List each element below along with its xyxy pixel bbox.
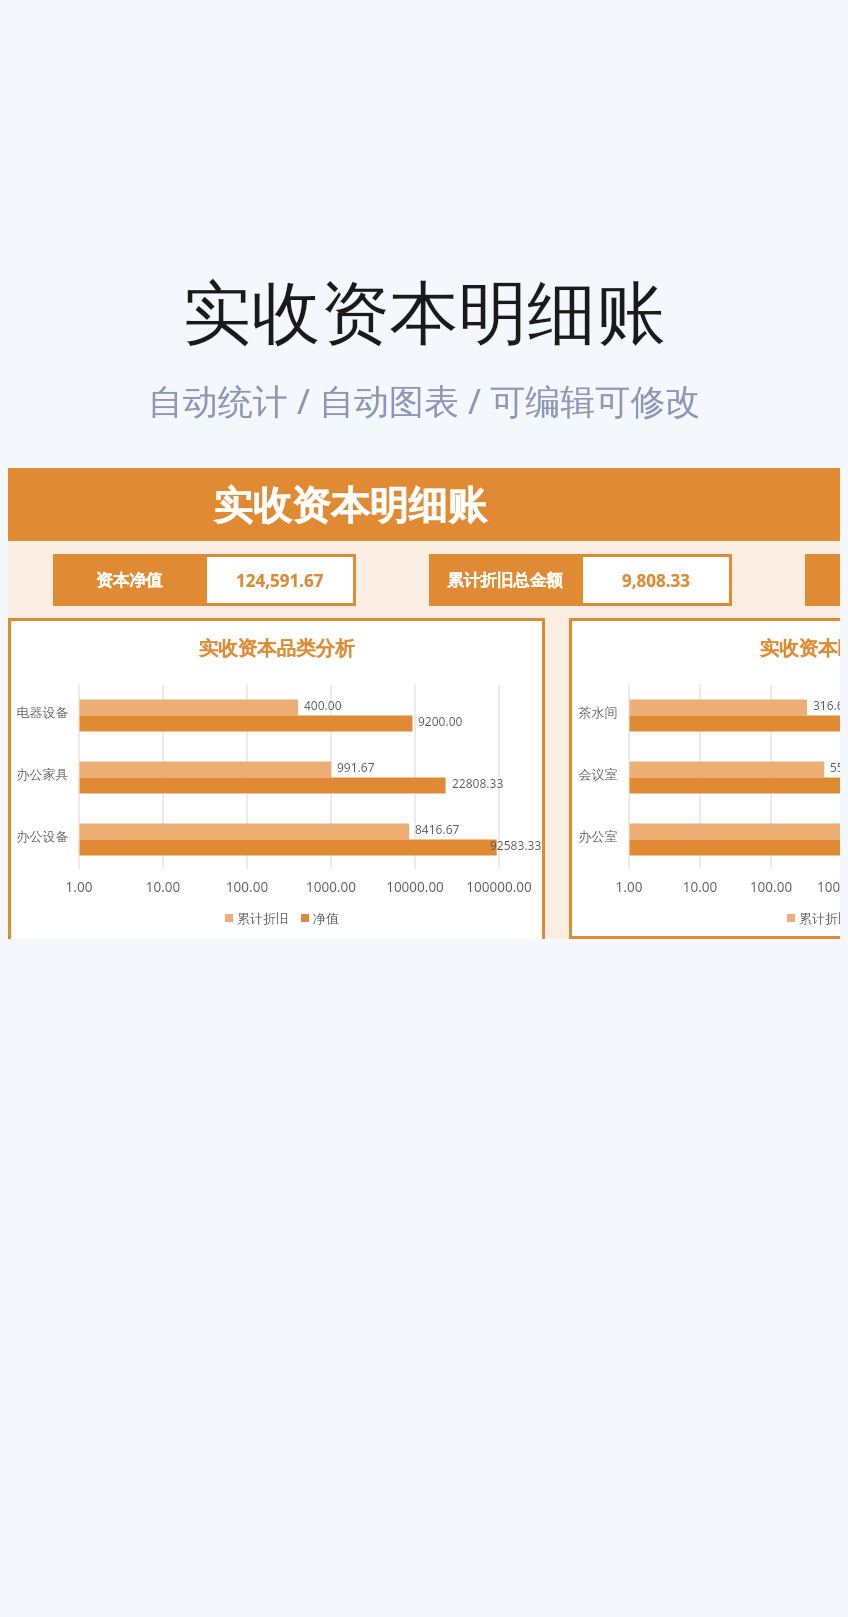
button[interactable]: 实收资本明细账 [8, 468, 840, 541]
button[interactable]: 资本净值 [53, 554, 356, 606]
staticText: 1.00 [19, 878, 139, 896]
button[interactable]: 累计折旧 [225, 910, 289, 926]
staticText: 会议室 [572, 766, 624, 782]
staticText: 100000.00 [439, 878, 545, 896]
staticText: 1.00 [569, 878, 689, 896]
button[interactable]: 累计折旧 [787, 910, 840, 926]
staticText: 累计折旧 [799, 910, 840, 926]
staticText: 991.67 [337, 759, 375, 775]
staticText: 400.00 [304, 697, 342, 713]
button[interactable]: 净值 [301, 910, 339, 926]
staticText: 22808.33 [452, 775, 504, 791]
staticText: 124,591.67 [236, 569, 324, 592]
staticText: 自动统计 / 自动图表 / 可编辑可修改 [0, 377, 848, 425]
staticText: 累计折旧总金额 [447, 570, 563, 591]
staticText: 8416.67 [415, 821, 460, 837]
staticText: 316.67 [813, 697, 840, 713]
staticText: 10.00 [103, 878, 223, 896]
staticText: 办公室 [572, 828, 624, 844]
staticText: 办公家具 [11, 766, 74, 782]
staticText: 100.00 [187, 878, 307, 896]
staticText: 资本净值 [96, 570, 162, 591]
staticText: 9200.00 [418, 713, 463, 729]
staticText: 茶水间 [572, 704, 624, 720]
staticText: 实收资本区域分析 [569, 636, 840, 661]
staticText: 电器设备 [11, 704, 74, 720]
staticText: 1000.00 [782, 878, 840, 896]
staticText: 办公设备 [11, 828, 74, 844]
button[interactable]: 累计折旧总金额 [429, 554, 732, 606]
staticText: 554.17 [830, 759, 840, 775]
staticText: 9,808.33 [622, 569, 690, 592]
staticText: 100.00 [711, 878, 831, 896]
button[interactable]: 实收资本品类分析图表 [8, 618, 545, 939]
button[interactable]: 实收资本区域分析图表 [569, 618, 840, 939]
staticText: 1000.00 [271, 878, 391, 896]
staticText: 实收资本明细账 [70, 481, 630, 530]
staticText: 10.00 [640, 878, 760, 896]
staticText: 累计折旧 [237, 910, 289, 926]
staticText: 92583.33 [490, 837, 542, 853]
staticText: 10000.00 [355, 878, 475, 896]
staticText: 净值 [313, 910, 339, 926]
staticText: 实收资本明细账 [0, 271, 848, 358]
staticText: 实收资本品类分析 [8, 636, 545, 661]
